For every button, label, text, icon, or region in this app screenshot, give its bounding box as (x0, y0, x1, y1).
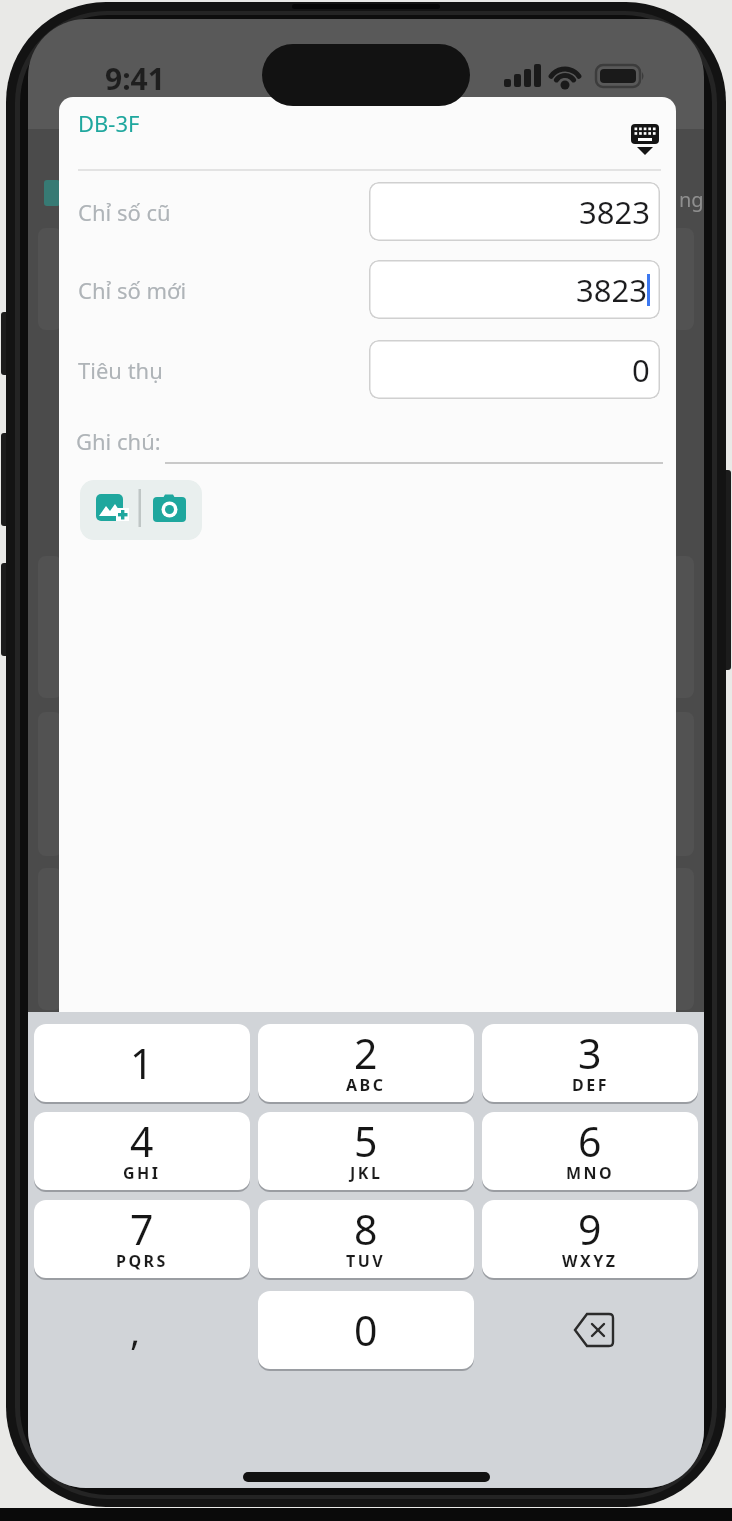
button[interactable] (627, 121, 663, 157)
staticText: ABC (346, 1074, 386, 1096)
button[interactable]: , (28, 1291, 243, 1369)
staticText: TUV (346, 1250, 386, 1272)
staticText: Chỉ số cũ (78, 197, 171, 227)
button[interactable]: 0 (258, 1291, 474, 1369)
staticText: 2 (354, 1025, 378, 1081)
staticText: MNO (566, 1162, 615, 1184)
staticText: 6 (578, 1113, 602, 1169)
staticText: GHI (123, 1162, 161, 1184)
staticText: JKL (350, 1162, 383, 1184)
staticText: DB-3F (78, 108, 140, 138)
staticText: Chỉ số mới (78, 275, 187, 305)
button[interactable]: 4 (34, 1112, 250, 1190)
button[interactable]: 5 (258, 1112, 474, 1190)
button[interactable]: 7 (34, 1200, 250, 1278)
button[interactable]: 8 (258, 1200, 474, 1278)
staticText: PQRS (116, 1250, 168, 1272)
staticText: 1 (130, 1035, 154, 1091)
staticText: Tiêu thụ (78, 355, 163, 385)
button[interactable]: 3823 (369, 260, 660, 319)
button[interactable]: 0 (369, 340, 660, 399)
staticText: 4 (130, 1113, 154, 1169)
button[interactable]: 6 (482, 1112, 698, 1190)
staticText: 3 (578, 1025, 602, 1081)
staticText: 7 (130, 1201, 154, 1257)
staticText: 3823 (576, 269, 647, 311)
staticText: 0 (632, 349, 650, 391)
button[interactable]: 9 (482, 1200, 698, 1278)
staticText: , (130, 1304, 141, 1356)
button[interactable]: 3 (482, 1024, 698, 1102)
staticText: 0 (354, 1302, 378, 1358)
button[interactable] (482, 1291, 698, 1369)
button[interactable] (80, 480, 202, 540)
staticText: ng (679, 186, 704, 213)
staticText: 9 (578, 1201, 602, 1257)
staticText: 8 (354, 1201, 378, 1257)
staticText: 9:41 (105, 58, 165, 94)
staticText: Ghi chú: (76, 426, 161, 456)
staticText: DEF (572, 1074, 609, 1096)
staticText: WXYZ (562, 1250, 618, 1272)
staticText: 3823 (579, 191, 650, 233)
staticText: 5 (354, 1113, 378, 1169)
button[interactable]: 2 (258, 1024, 474, 1102)
button[interactable]: 3823 (369, 182, 660, 241)
button[interactable]: 1 (34, 1024, 250, 1102)
